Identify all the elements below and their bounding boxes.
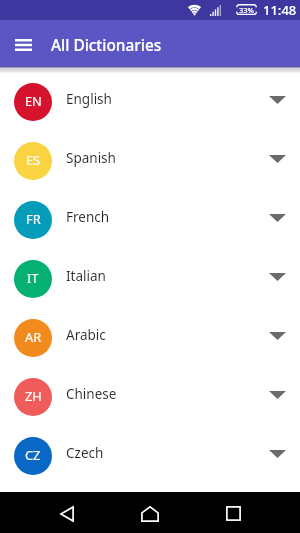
staticText: AR (25, 328, 42, 345)
staticText: Spanish (66, 149, 116, 167)
button[interactable]: Expand Chinese (257, 375, 297, 415)
staticText: IT (27, 269, 39, 286)
staticText: 11:48 (263, 1, 297, 19)
staticText: CZ (25, 446, 41, 463)
button[interactable]: Open navigation drawer (1, 22, 46, 67)
button[interactable]: Home (125, 492, 175, 533)
button[interactable]: Expand French (257, 198, 297, 238)
staticText: Italian (66, 267, 106, 285)
staticText: ES (26, 151, 41, 168)
button[interactable]: Expand Czech (257, 434, 297, 474)
staticText: English (66, 90, 112, 108)
staticText: All Dictionaries (51, 35, 162, 56)
button[interactable]: ES (0, 131, 300, 190)
staticText: Arabic (66, 326, 106, 344)
staticText: ZH (25, 387, 42, 404)
button[interactable]: FR (0, 190, 300, 249)
button[interactable]: Back (42, 492, 92, 533)
button[interactable]: ZH (0, 367, 300, 426)
button[interactable]: IT (0, 249, 300, 308)
staticText: Czech (66, 444, 104, 462)
button[interactable]: Expand Italian (257, 257, 297, 297)
button[interactable]: AR (0, 308, 300, 367)
staticText: EN (25, 92, 42, 109)
button[interactable]: Expand Arabic (257, 316, 297, 356)
button[interactable]: EN (0, 72, 300, 131)
button[interactable]: CZ (0, 426, 300, 485)
button[interactable]: Expand English (257, 80, 297, 120)
button[interactable]: Recent apps (208, 492, 258, 533)
staticText: French (66, 208, 110, 226)
staticText: 33% (239, 5, 254, 15)
button[interactable]: Expand Spanish (257, 139, 297, 179)
staticText: FR (26, 210, 41, 227)
staticText: Chinese (66, 385, 117, 403)
